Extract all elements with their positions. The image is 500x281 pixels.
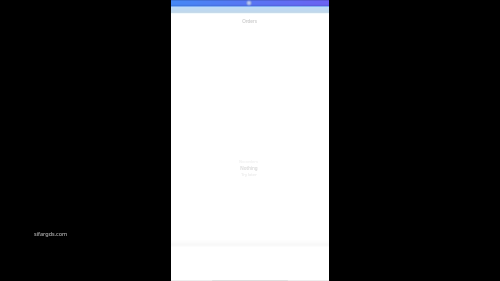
button[interactable]: Orders xyxy=(171,18,329,25)
staticText: No orders xyxy=(239,159,258,164)
staticText: Nothing xyxy=(240,165,258,171)
button[interactable]: No orders xyxy=(239,159,258,177)
staticText: sifargds.com xyxy=(34,230,68,237)
staticText: Try later xyxy=(241,172,257,177)
other: Camera xyxy=(246,0,252,6)
staticText: Orders xyxy=(242,18,257,24)
